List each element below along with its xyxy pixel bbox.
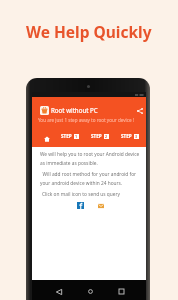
button[interactable]: STEP xyxy=(116,128,144,144)
staticText: STEP xyxy=(121,133,132,139)
button[interactable]: Share xyxy=(134,105,146,117)
button[interactable]: STEP xyxy=(86,128,114,144)
staticText: STEP xyxy=(91,133,102,139)
staticText: Click on mail icon to send us query xyxy=(42,191,120,198)
staticText: Root without PC xyxy=(51,106,98,114)
button[interactable]: Email xyxy=(97,202,104,209)
staticText: 3 xyxy=(135,134,138,139)
button[interactable]: Home xyxy=(87,288,94,295)
staticText: You are just 1 step away to root your de… xyxy=(38,117,134,123)
staticText: 1 xyxy=(75,134,78,139)
button[interactable]: Facebook xyxy=(77,202,84,209)
button[interactable]: Home xyxy=(34,131,59,147)
button[interactable]: STEP xyxy=(56,128,84,144)
button[interactable]: Back xyxy=(55,288,62,295)
staticText: We Help Quickly xyxy=(26,21,152,42)
staticText: We will help you to root your Android de… xyxy=(40,151,145,166)
button[interactable]: Recents xyxy=(118,288,125,295)
staticText: STEP xyxy=(61,133,72,139)
staticText: 2 xyxy=(105,134,108,139)
staticText: Will add root method for your android fo… xyxy=(40,171,145,186)
